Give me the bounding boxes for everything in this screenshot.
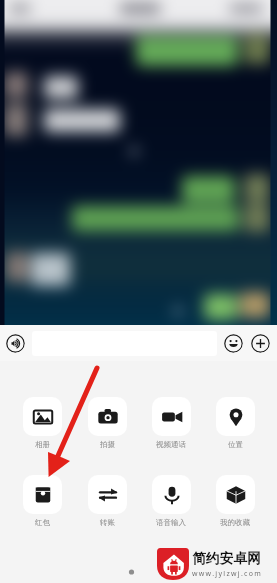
button[interactable]: 语音输入	[139, 475, 203, 527]
button[interactable]: 视频通话	[139, 397, 203, 449]
staticText: 红包	[35, 518, 50, 527]
staticText: 相册	[35, 440, 50, 449]
button[interactable]: More	[250, 333, 270, 353]
button[interactable]: 红包	[10, 475, 75, 527]
button[interactable]: 拍摄	[75, 397, 139, 449]
button[interactable]: Emoji	[223, 333, 243, 353]
button[interactable]: 位置	[203, 397, 267, 449]
staticText: 拍摄	[100, 440, 115, 449]
staticText: www.jylzwj.com	[192, 569, 263, 579]
staticText: 位置	[228, 440, 243, 449]
button[interactable]: 我的收藏	[203, 475, 267, 527]
staticText: 视频通话	[156, 440, 186, 449]
staticText: 我的收藏	[220, 518, 250, 527]
staticText: 简约安卓网	[192, 550, 261, 567]
button[interactable]: Voice input	[5, 333, 25, 353]
staticText: 转账	[100, 518, 115, 527]
button[interactable]: 相册	[10, 397, 75, 449]
button[interactable]: 转账	[75, 475, 139, 527]
staticText: 语音输入	[156, 518, 186, 527]
